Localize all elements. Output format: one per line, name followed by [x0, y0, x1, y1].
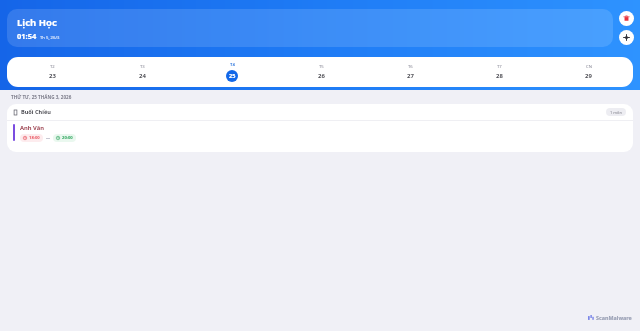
button[interactable]: Buổi Chiều	[7, 104, 633, 120]
staticText: 24	[139, 72, 146, 80]
staticText: 20:00	[62, 135, 73, 141]
button[interactable]: Anh Văn	[7, 121, 633, 152]
staticText: T5	[319, 64, 324, 70]
button[interactable]: T6	[366, 57, 455, 87]
staticText: 18:00	[29, 135, 40, 141]
button[interactable]: T5	[277, 57, 366, 87]
staticText: 1 môn	[610, 110, 622, 115]
staticText: 29	[585, 72, 592, 80]
button[interactable]: Lịch Học	[7, 9, 613, 47]
staticText: 28	[496, 72, 503, 80]
staticText: T3	[140, 64, 145, 70]
staticText: 01:54	[17, 31, 37, 41]
button[interactable]: CN	[544, 57, 633, 87]
staticText: Th 5, 26/3	[40, 35, 60, 41]
staticText: Buổi Chiều	[21, 108, 51, 116]
staticText: T6	[408, 64, 413, 70]
button[interactable]: T2	[7, 57, 97, 87]
staticText: 23	[49, 72, 56, 80]
button[interactable]: Delete	[619, 11, 634, 26]
staticText: THỨ TƯ, 25 THÁNG 3, 2026	[11, 94, 72, 100]
staticText: Lịch Học	[17, 16, 57, 29]
staticText: CN	[586, 64, 592, 70]
staticText: T4	[230, 62, 235, 68]
button[interactable]: T4	[187, 57, 277, 87]
staticText: T2	[50, 64, 55, 70]
staticText: Anh Văn	[20, 124, 44, 132]
button[interactable]: Add	[619, 30, 634, 45]
staticText: 25	[229, 72, 236, 80]
button[interactable]: T7	[455, 57, 544, 87]
button[interactable]: T3	[97, 57, 187, 87]
staticText: 27	[407, 72, 414, 80]
staticText: 26	[318, 72, 325, 80]
staticText: ScanMalware	[596, 314, 632, 321]
staticText: T7	[497, 64, 502, 70]
